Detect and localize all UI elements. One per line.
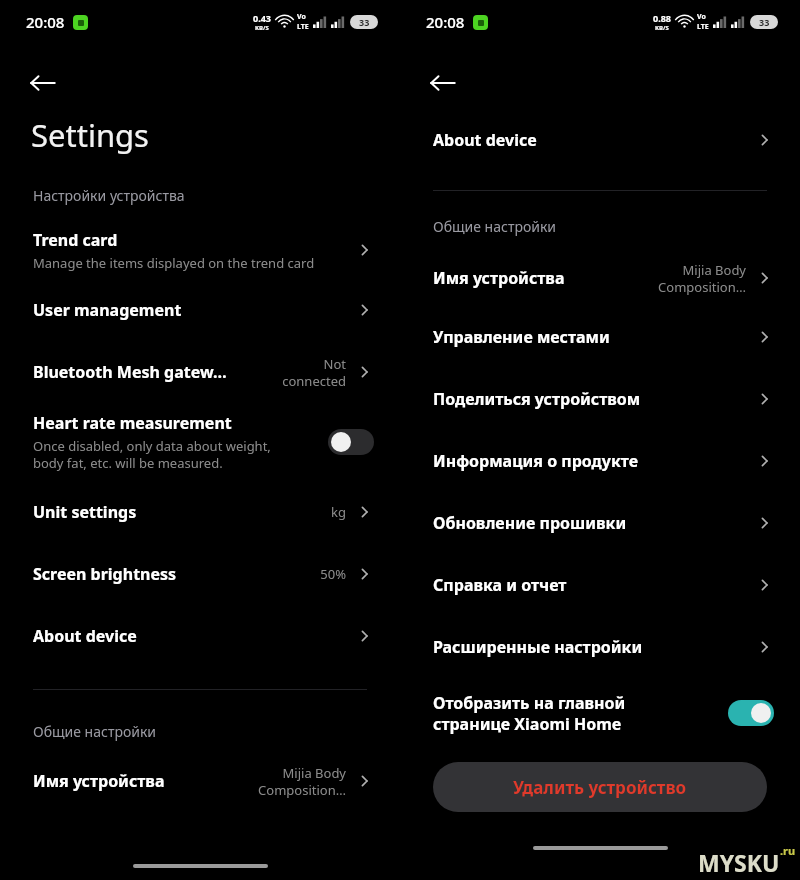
staticText: Manage the items displayed on the trend …: [33, 254, 315, 272]
button[interactable]: Screen brightness: [0, 543, 400, 605]
staticText: Расширенные настройки: [433, 636, 643, 658]
button[interactable]: About device: [0, 605, 400, 667]
button[interactable]: Справка и отчет: [400, 554, 800, 616]
staticText: 20:08: [26, 12, 65, 32]
staticText: 0.88: [653, 12, 671, 24]
staticText: Имя устройства: [33, 770, 165, 792]
staticText: Mijia Body Composition…: [658, 261, 746, 296]
staticText: Trend card: [33, 229, 118, 251]
staticText: KB/S: [655, 24, 669, 32]
staticText: Удалить устройство: [513, 776, 687, 799]
button[interactable]: Управление местами: [400, 306, 800, 368]
staticText: Информация о продукте: [433, 450, 639, 472]
staticText: 20:08: [426, 12, 465, 32]
staticText: 0.43: [253, 12, 271, 24]
staticText: 33: [359, 16, 370, 28]
staticText: 50%: [320, 565, 346, 583]
button[interactable]: Trend card: [0, 221, 400, 279]
staticText: Once disabled, only data about weight, b…: [33, 437, 271, 472]
staticText: LTE: [297, 22, 309, 32]
staticText: Поделиться устройством: [433, 388, 641, 410]
button[interactable]: Обновление прошивки: [400, 492, 800, 554]
staticText: Unit settings: [33, 501, 137, 523]
staticText: Справка и отчет: [433, 574, 567, 596]
button[interactable]: Back: [18, 58, 68, 108]
staticText: kg: [331, 503, 346, 521]
staticText: Vo: [297, 12, 306, 22]
button[interactable]: Bluetooth Mesh gatew…: [0, 341, 400, 403]
staticText: Общие настройки: [33, 722, 157, 741]
button[interactable]: Удалить устройство: [433, 762, 767, 812]
staticText: About device: [33, 625, 137, 647]
staticText: Vo: [697, 12, 706, 22]
button[interactable]: Unit settings: [0, 481, 400, 543]
staticText: Имя устройства: [433, 267, 565, 289]
button[interactable]: Отобразить на главной странице Xiaomi Ho…: [400, 678, 800, 748]
staticText: Heart rate measurement: [33, 412, 232, 434]
staticText: KB/S: [255, 24, 269, 32]
button[interactable]: User management: [0, 279, 400, 341]
button[interactable]: Back: [418, 58, 468, 108]
staticText: LTE: [697, 22, 709, 32]
button[interactable]: Поделиться устройством: [400, 368, 800, 430]
staticText: Обновление прошивки: [433, 512, 627, 534]
button[interactable]: About device: [400, 116, 800, 164]
staticText: Mijia Body Composition…: [258, 764, 346, 799]
button[interactable]: Имя устройства: [400, 250, 800, 306]
staticText: Settings: [31, 114, 149, 156]
button[interactable]: Heart rate measurement: [0, 403, 400, 481]
staticText: Bluetooth Mesh gatew…: [33, 361, 227, 383]
staticText: 33: [759, 16, 770, 28]
staticText: About device: [433, 129, 537, 151]
staticText: Общие настройки: [433, 217, 557, 236]
button[interactable]: Информация о продукте: [400, 430, 800, 492]
button[interactable]: Расширенные настройки: [400, 616, 800, 678]
button[interactable]: Toggle off: [328, 429, 374, 455]
staticText: Not connected: [282, 355, 346, 390]
staticText: .ru: [780, 843, 796, 858]
staticText: Screen brightness: [33, 563, 177, 585]
staticText: Управление местами: [433, 326, 610, 348]
staticText: Настройки устройства: [33, 186, 185, 205]
staticText: Отобразить на главной странице Xiaomi Ho…: [433, 692, 626, 735]
staticText: User management: [33, 299, 182, 321]
staticText: MYSKU: [698, 847, 780, 878]
button[interactable]: Имя устройства: [0, 753, 400, 809]
button[interactable]: Toggle on: [728, 700, 774, 726]
